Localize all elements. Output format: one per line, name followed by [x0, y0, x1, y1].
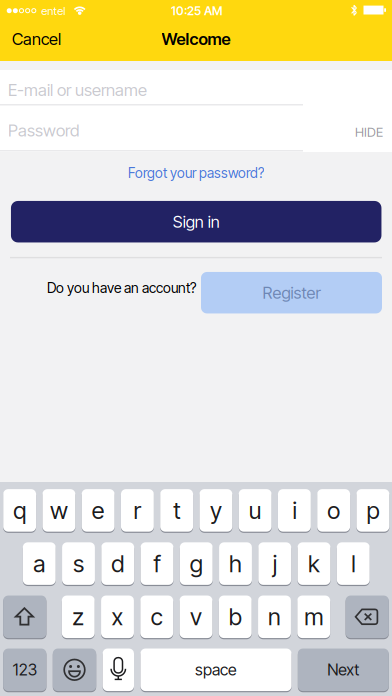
button[interactable]: i	[278, 488, 311, 533]
button[interactable]: v	[180, 594, 212, 639]
staticText: Forgot your password?	[128, 165, 264, 181]
button[interactable]: 123	[3, 647, 46, 692]
staticText: Sign in	[173, 212, 220, 232]
staticText: t	[173, 496, 180, 525]
button[interactable]: z	[62, 594, 95, 639]
staticText: g	[190, 549, 203, 578]
button[interactable]: g	[180, 541, 213, 586]
button[interactable]: n	[258, 594, 291, 639]
button[interactable]: r	[121, 488, 154, 533]
staticText: m	[304, 603, 323, 631]
staticText: p	[366, 496, 379, 525]
button[interactable]: space	[140, 647, 291, 692]
staticText: j	[273, 549, 277, 578]
button[interactable]: d	[101, 541, 134, 586]
button[interactable]: u	[239, 488, 272, 533]
staticText: Do you have an account?	[47, 279, 196, 296]
staticText: c	[151, 603, 163, 631]
staticText: entel	[41, 4, 65, 18]
button[interactable]: a	[23, 541, 56, 586]
staticText: z	[72, 603, 84, 631]
button[interactable]: m	[297, 594, 330, 639]
button[interactable]: c	[140, 594, 173, 639]
staticText: b	[229, 603, 242, 631]
button[interactable]: s	[62, 541, 95, 586]
staticText: h	[229, 549, 242, 578]
staticText: Register	[262, 283, 320, 303]
button[interactable]: w	[42, 488, 75, 533]
button[interactable]: x	[101, 594, 134, 639]
button[interactable]: f	[141, 541, 173, 586]
staticText: Password	[8, 120, 79, 140]
staticText: l	[351, 549, 355, 578]
button[interactable]: y	[199, 488, 232, 533]
staticText: f	[153, 549, 160, 578]
staticText: n	[268, 603, 281, 631]
button[interactable]: h	[219, 541, 252, 586]
button[interactable]: Next	[298, 647, 389, 692]
staticText: Welcome	[161, 29, 230, 49]
button[interactable]	[346, 594, 389, 639]
staticText: 10:25 AM	[171, 3, 222, 18]
staticText: x	[111, 603, 123, 631]
button[interactable]: Forgot your password?	[128, 165, 264, 181]
button[interactable]	[103, 647, 134, 692]
button[interactable]: b	[219, 594, 252, 639]
staticText: w	[50, 496, 68, 525]
staticText: 123	[13, 660, 37, 679]
button[interactable]	[3, 594, 46, 639]
button[interactable]: o	[317, 488, 350, 533]
staticText: Next	[327, 660, 359, 679]
staticText: q	[13, 496, 26, 525]
button[interactable]: HIDE	[323, 120, 383, 144]
staticText: d	[111, 549, 124, 578]
staticText: E-mail or username	[8, 80, 147, 100]
staticText: e	[92, 496, 105, 525]
button[interactable]	[53, 647, 96, 692]
staticText: u	[249, 496, 262, 525]
staticText: v	[190, 603, 202, 631]
staticText: s	[73, 549, 84, 578]
button[interactable]: Password	[0, 110, 392, 150]
staticText: r	[133, 496, 141, 525]
button[interactable]: E-mail or username	[0, 70, 392, 110]
staticText: y	[210, 496, 222, 525]
button[interactable]: j	[258, 541, 291, 586]
button[interactable]: e	[82, 488, 115, 533]
staticText: k	[308, 549, 320, 578]
staticText: Cancel	[12, 29, 61, 49]
button[interactable]: Cancel	[12, 24, 112, 54]
staticText: a	[33, 549, 45, 578]
button[interactable]: Register	[201, 272, 382, 313]
button[interactable]: k	[298, 541, 330, 586]
staticText: space	[195, 660, 237, 679]
staticText: HIDE	[355, 124, 383, 140]
button[interactable]: p	[356, 488, 389, 533]
button[interactable]: Sign in	[11, 201, 381, 242]
button[interactable]: q	[3, 488, 36, 533]
button[interactable]: t	[160, 488, 193, 533]
button[interactable]: l	[337, 541, 370, 586]
staticText: o	[327, 496, 340, 525]
staticText: i	[292, 496, 296, 525]
